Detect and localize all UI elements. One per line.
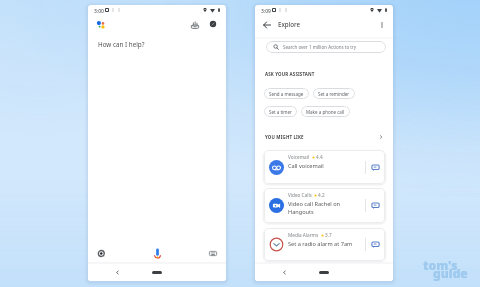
staticText: Send a message [269, 91, 304, 97]
staticText: guide [433, 265, 468, 281]
staticText: Explore [278, 20, 301, 28]
staticText: Media Alarms [288, 232, 319, 238]
staticText: How can I help? [98, 40, 145, 49]
staticText: 4.4 [316, 154, 323, 160]
staticText: Make a phone call [306, 109, 345, 115]
staticText: tom's [423, 257, 458, 273]
staticText: Call voicemail [288, 162, 324, 170]
button[interactable]: Keyboard [209, 251, 217, 256]
staticText: YOU MIGHT LIKE [265, 134, 304, 140]
button[interactable]: YOU MIGHT LIKE [255, 130, 393, 144]
button[interactable]: Send message [371, 201, 380, 210]
button[interactable]: Explore [209, 20, 217, 28]
button[interactable]: Video Calls [264, 188, 385, 223]
button[interactable]: Back [263, 21, 271, 29]
staticText: Video Calls [288, 192, 312, 198]
staticText: 3:09 [261, 8, 271, 15]
button[interactable]: Microphone [152, 247, 163, 258]
button[interactable]: Set a timer [264, 106, 297, 117]
button[interactable]: More options [377, 20, 387, 30]
button[interactable]: Search over 1 million Actions to try [266, 41, 386, 53]
staticText: 3:00 [94, 8, 104, 15]
button[interactable]: Assistant [95, 19, 107, 31]
button[interactable]: Back [115, 270, 120, 275]
button[interactable]: Back [282, 270, 287, 275]
button[interactable]: Google Lens [98, 250, 105, 257]
button[interactable]: Send message [371, 163, 380, 172]
button[interactable]: Voicemail [264, 150, 385, 184]
staticText: Video call Rachel on [288, 200, 341, 208]
button[interactable]: Snapshot [191, 21, 199, 29]
staticText: Search over 1 million Actions to try [283, 44, 357, 50]
staticText: Set a reminder [318, 91, 350, 97]
button[interactable]: Media Alarms [264, 228, 385, 261]
button[interactable]: Send message [371, 240, 380, 249]
staticText: Voicemail [288, 154, 310, 160]
button[interactable]: Set a reminder [313, 88, 355, 99]
button[interactable]: Make a phone call [301, 106, 350, 117]
staticText: 4.2 [318, 192, 325, 198]
staticText: ASK YOUR ASSISTANT [265, 71, 315, 77]
staticText: Hangouts [288, 208, 314, 216]
staticText: Set a timer [269, 109, 292, 115]
staticText: 3.7 [325, 232, 332, 238]
button[interactable]: Send a message [264, 88, 309, 99]
staticText: Set a radio alarm at 7am [288, 240, 353, 248]
